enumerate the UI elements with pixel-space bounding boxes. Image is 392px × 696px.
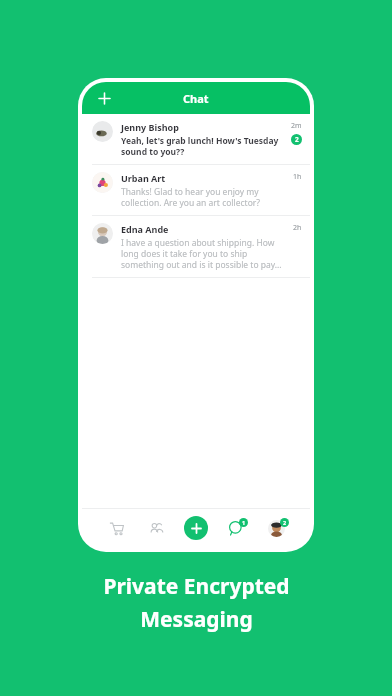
button[interactable]: Urban Art <box>82 165 310 215</box>
staticText: 2 <box>283 519 287 526</box>
staticText: Edna Ande <box>121 223 169 235</box>
staticText: Yeah, let's grab lunch! How's Tuesday so… <box>121 135 285 157</box>
button[interactable]: Contacts <box>136 508 176 548</box>
button[interactable]: New message <box>184 516 208 540</box>
staticText: Thanks! Glad to hear you enjoy my collec… <box>121 186 287 208</box>
staticText: 2 <box>295 135 299 144</box>
button[interactable]: Jenny Bishop <box>82 114 310 164</box>
staticText: I have a question about shipping. How lo… <box>121 237 287 270</box>
button[interactable]: Edna Ande <box>82 216 310 277</box>
button[interactable]: Cart <box>96 508 136 548</box>
staticText: Jenny Bishop <box>121 121 179 133</box>
staticText: Messaging <box>140 605 253 634</box>
button[interactable]: Chats <box>216 508 256 548</box>
staticText: 1 <box>242 519 246 526</box>
staticText: 2h <box>293 223 302 233</box>
staticText: Chat <box>183 91 209 106</box>
staticText: 1h <box>293 172 302 182</box>
staticText: 2m <box>291 121 302 131</box>
button[interactable]: Profile <box>256 508 296 548</box>
staticText: Urban Art <box>121 172 166 184</box>
staticText: Private Encrypted <box>103 572 290 601</box>
button[interactable]: New chat <box>92 86 116 110</box>
